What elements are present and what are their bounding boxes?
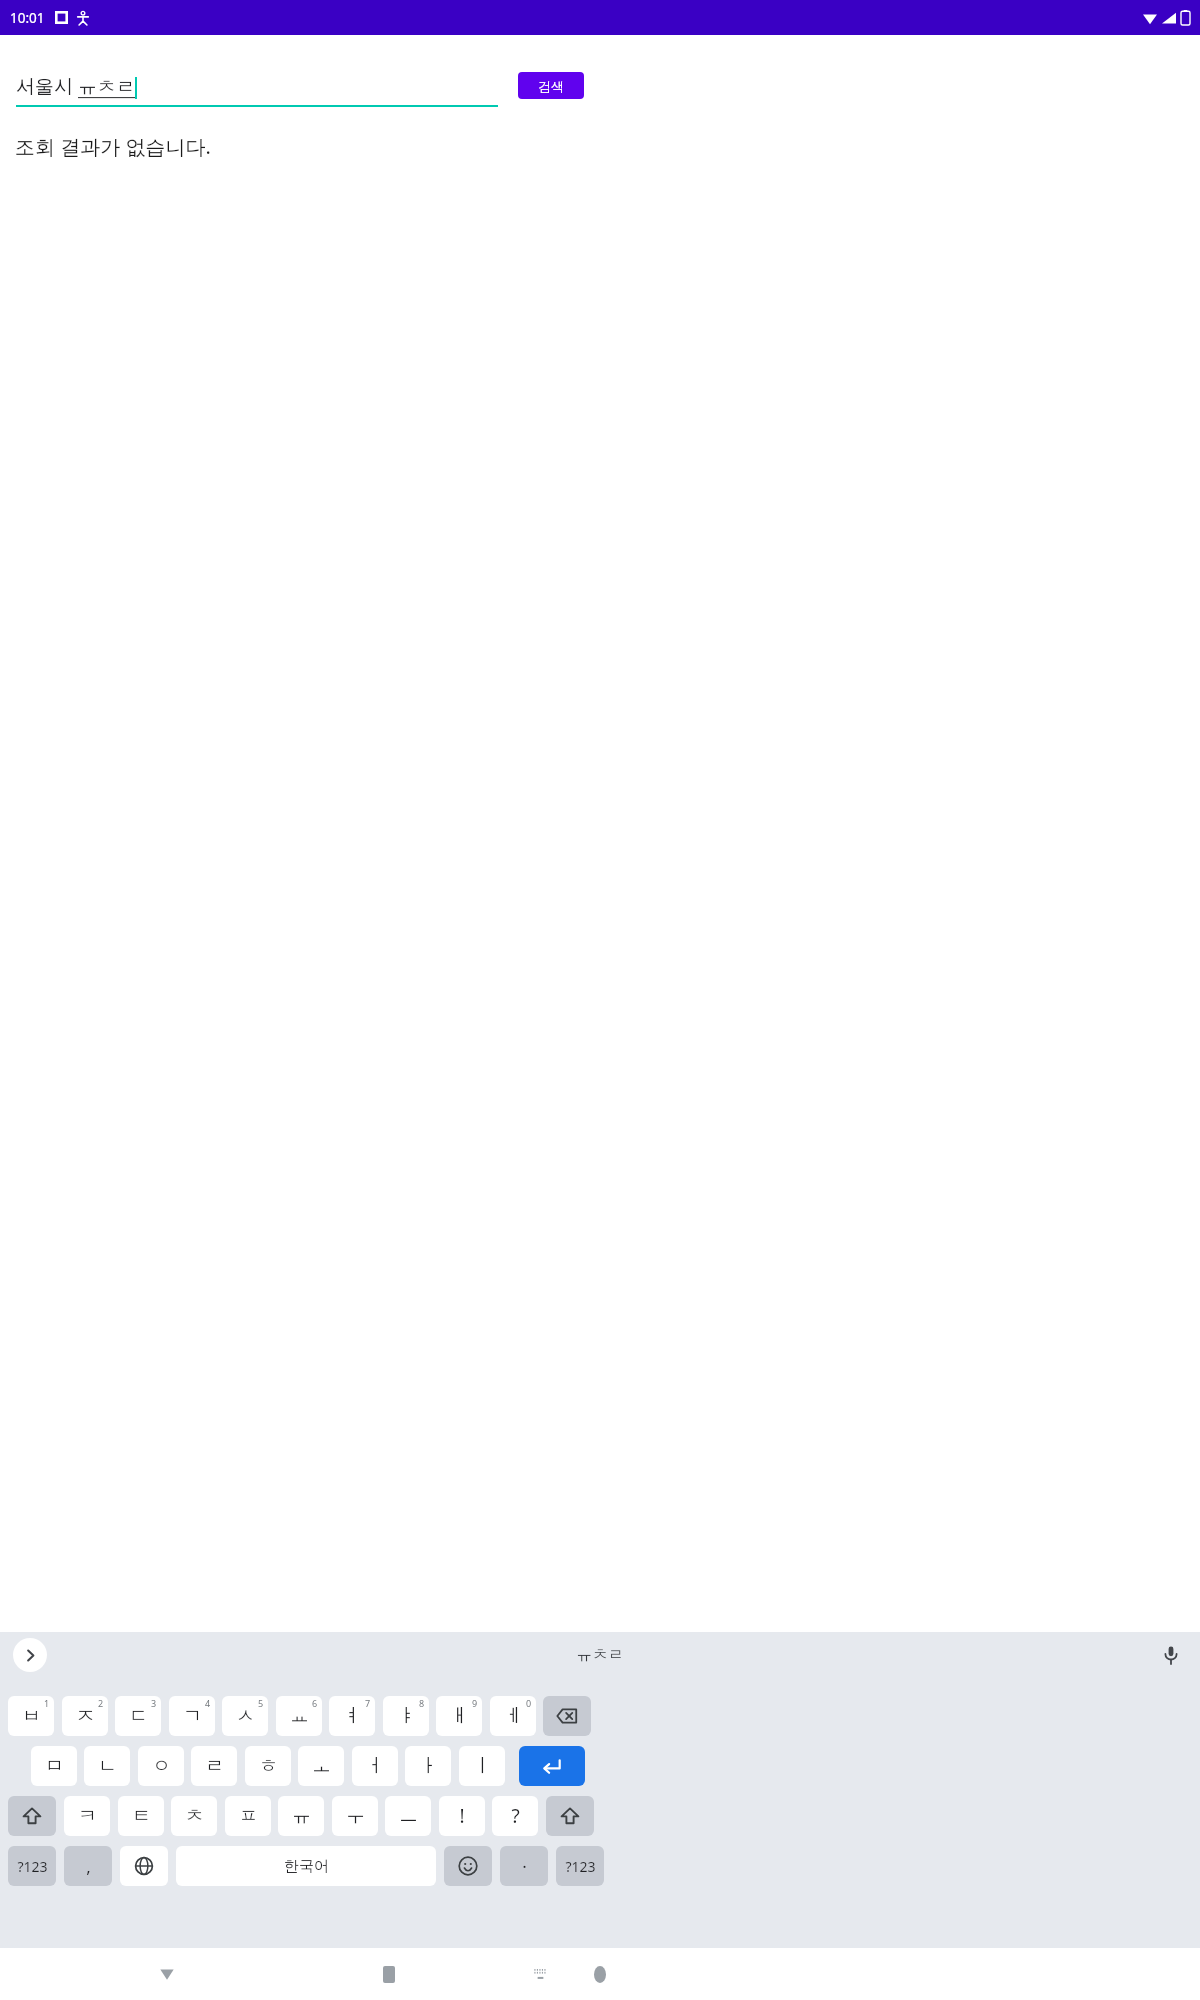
- staticText: 0: [526, 1697, 532, 1709]
- button[interactable]: Back: [145, 1952, 189, 1996]
- button[interactable]: ·: [500, 1846, 548, 1886]
- staticText: ㅠ: [292, 1804, 311, 1828]
- button[interactable]: ?: [492, 1796, 538, 1836]
- staticText: ㄱ: [183, 1704, 202, 1728]
- staticText: ㅗ: [312, 1754, 331, 1778]
- button[interactable]: ㅕ: [329, 1696, 375, 1736]
- staticText: 6: [312, 1697, 318, 1709]
- staticText: ㅋ: [78, 1804, 97, 1828]
- button[interactable]: ㄹ: [191, 1746, 237, 1786]
- staticText: ㅑ: [397, 1704, 416, 1728]
- staticText: ㅡ: [399, 1804, 418, 1828]
- staticText: ㄹ: [205, 1754, 224, 1778]
- staticText: ㅂ: [22, 1704, 41, 1728]
- button[interactable]: 한국어: [176, 1846, 436, 1886]
- button[interactable]: ㅎ: [245, 1746, 291, 1786]
- button[interactable]: Voice input: [1156, 1640, 1186, 1670]
- staticText: ㅏ: [419, 1754, 438, 1778]
- button[interactable]: Keyboard: [523, 1957, 557, 1991]
- staticText: ㅈ: [76, 1704, 95, 1728]
- button[interactable]: Emoji: [444, 1846, 492, 1886]
- staticText: 검색: [538, 78, 564, 94]
- staticText: ㅁ: [45, 1754, 64, 1778]
- button[interactable]: !: [439, 1796, 485, 1836]
- button[interactable]: ㅛ: [276, 1696, 322, 1736]
- button[interactable]: ㅅ: [222, 1696, 268, 1736]
- staticText: 서울시: [16, 73, 78, 99]
- button[interactable]: ㅡ: [385, 1796, 431, 1836]
- staticText: 3: [151, 1697, 157, 1709]
- button[interactable]: ㅈ: [62, 1696, 108, 1736]
- button[interactable]: Enter: [519, 1746, 585, 1786]
- staticText: ㅐ: [450, 1704, 469, 1728]
- button[interactable]: ㅋ: [64, 1796, 110, 1836]
- staticText: ?123: [565, 1857, 596, 1876]
- button[interactable]: Expand suggestions: [13, 1638, 47, 1672]
- button[interactable]: Change keyboard: [120, 1846, 168, 1886]
- button[interactable]: Shift: [8, 1796, 56, 1836]
- button[interactable]: Home: [578, 1952, 622, 1996]
- button[interactable]: 서울시: [16, 73, 498, 107]
- staticText: ㅛ: [290, 1704, 309, 1728]
- button[interactable]: Shift: [546, 1796, 594, 1836]
- staticText: !: [459, 1803, 465, 1829]
- button[interactable]: ㅏ: [405, 1746, 451, 1786]
- staticText: ㅠㅊㄹ: [78, 75, 135, 99]
- staticText: ㅠㅊㄹ: [576, 1645, 624, 1665]
- button[interactable]: ㅗ: [298, 1746, 344, 1786]
- staticText: ㅊ: [185, 1804, 204, 1828]
- staticText: ㄷ: [129, 1704, 148, 1728]
- staticText: ㅜ: [346, 1804, 365, 1828]
- staticText: 한국어: [284, 1857, 329, 1876]
- staticText: 10:01: [10, 9, 45, 27]
- button[interactable]: ㄴ: [84, 1746, 130, 1786]
- staticText: 1: [44, 1697, 50, 1709]
- staticText: ㅇ: [152, 1754, 171, 1778]
- staticText: ㄴ: [98, 1754, 117, 1778]
- staticText: ㅅ: [236, 1704, 255, 1728]
- button[interactable]: Backspace: [543, 1696, 591, 1736]
- staticText: ㅔ: [504, 1704, 523, 1728]
- button[interactable]: Recent apps: [367, 1952, 411, 1996]
- staticText: ㅓ: [366, 1754, 385, 1778]
- staticText: 조회 결과가 없습니다.: [15, 133, 211, 160]
- button[interactable]: 검색: [518, 72, 584, 99]
- staticText: ㅎ: [259, 1754, 278, 1778]
- staticText: ?123: [17, 1857, 48, 1876]
- staticText: 5: [258, 1697, 264, 1709]
- button[interactable]: ㅍ: [225, 1796, 271, 1836]
- button[interactable]: ㅌ: [118, 1796, 164, 1836]
- button[interactable]: ㅐ: [436, 1696, 482, 1736]
- staticText: 7: [365, 1697, 371, 1709]
- staticText: ㅍ: [239, 1804, 258, 1828]
- button[interactable]: ?123: [556, 1846, 604, 1886]
- staticText: 4: [205, 1697, 211, 1709]
- button[interactable]: ㄷ: [115, 1696, 161, 1736]
- staticText: ㅣ: [473, 1754, 492, 1778]
- staticText: ·: [522, 1855, 527, 1878]
- button[interactable]: ㅠ: [278, 1796, 324, 1836]
- button[interactable]: ㅂ: [8, 1696, 54, 1736]
- button[interactable]: ,: [64, 1846, 112, 1886]
- button[interactable]: ㅑ: [383, 1696, 429, 1736]
- button[interactable]: ㅁ: [31, 1746, 77, 1786]
- staticText: ㅕ: [343, 1704, 362, 1728]
- button[interactable]: ㅊ: [171, 1796, 217, 1836]
- button[interactable]: ?123: [8, 1846, 56, 1886]
- staticText: ,: [86, 1855, 91, 1878]
- button[interactable]: ㅓ: [352, 1746, 398, 1786]
- button[interactable]: ㅜ: [332, 1796, 378, 1836]
- button[interactable]: ㅇ: [138, 1746, 184, 1786]
- staticText: ?: [511, 1803, 520, 1829]
- button[interactable]: ㅔ: [490, 1696, 536, 1736]
- button[interactable]: ㄱ: [169, 1696, 215, 1736]
- staticText: 9: [472, 1697, 478, 1709]
- staticText: ㅌ: [132, 1804, 151, 1828]
- staticText: 2: [98, 1697, 104, 1709]
- button[interactable]: ㅣ: [459, 1746, 505, 1786]
- staticText: 8: [419, 1697, 425, 1709]
